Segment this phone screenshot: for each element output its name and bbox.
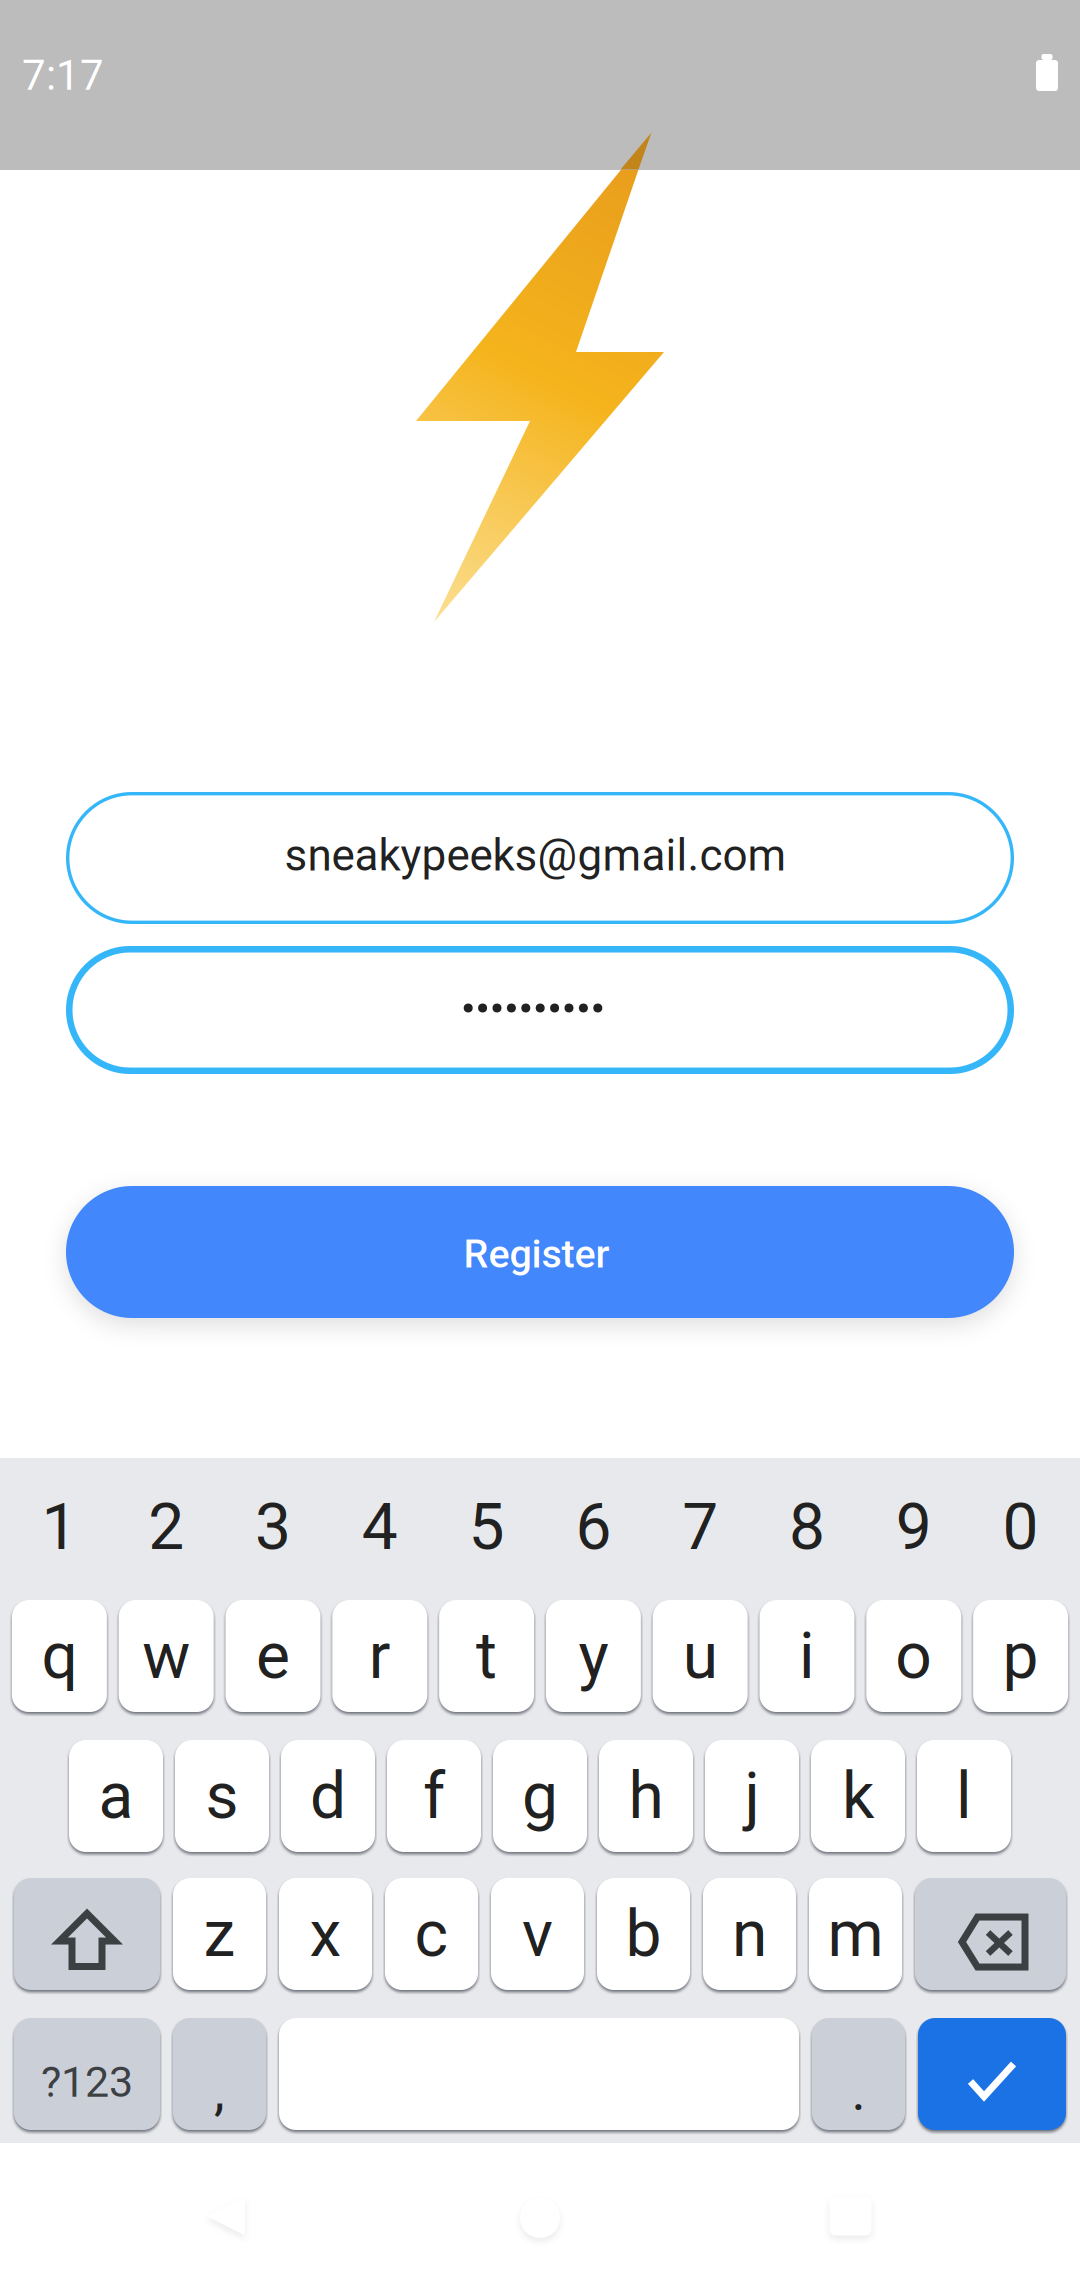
staticText: o <box>895 1618 932 1693</box>
staticText: 0 <box>1003 1489 1039 1564</box>
button[interactable]: d <box>281 1740 375 1852</box>
staticText: 8 <box>789 1489 825 1564</box>
staticText: y <box>578 1618 608 1693</box>
button[interactable]: Shift <box>14 1878 160 1990</box>
button[interactable]: l <box>917 1740 1011 1852</box>
staticText: sneakypeeks@gmail.com <box>284 830 786 881</box>
staticText: s <box>205 1758 238 1833</box>
staticText: 3 <box>255 1489 291 1564</box>
button[interactable]: a <box>69 1740 163 1852</box>
button[interactable]: s <box>175 1740 269 1852</box>
button[interactable]: 0 <box>967 1479 1074 1575</box>
button[interactable]: y <box>546 1600 641 1712</box>
staticText: j <box>744 1758 759 1833</box>
button[interactable]: 6 <box>540 1479 647 1575</box>
staticText: 5 <box>469 1489 505 1564</box>
staticText: ?123 <box>41 2057 133 2107</box>
button[interactable]: 2 <box>113 1479 220 1575</box>
staticText: 7:17 <box>22 51 104 100</box>
button[interactable]: w <box>119 1600 214 1712</box>
staticText: , <box>214 2059 225 2123</box>
button[interactable]: n <box>703 1878 796 1990</box>
staticText: h <box>628 1758 663 1833</box>
staticText: z <box>203 1896 235 1971</box>
staticText: x <box>309 1896 341 1971</box>
staticText: n <box>732 1896 767 1971</box>
staticText: r <box>369 1618 391 1693</box>
button[interactable] <box>279 2018 799 2130</box>
staticText: 7 <box>682 1489 718 1564</box>
staticText: m <box>827 1896 883 1971</box>
button[interactable]: x <box>279 1878 372 1990</box>
staticText: 4 <box>362 1489 398 1564</box>
button[interactable]: t <box>439 1600 534 1712</box>
staticText: . <box>851 2059 865 2123</box>
staticText: b <box>625 1896 661 1971</box>
button[interactable]: u <box>653 1600 748 1712</box>
staticText: 6 <box>575 1489 611 1564</box>
button[interactable]: Enter <box>918 2018 1066 2130</box>
button[interactable]: r <box>332 1600 427 1712</box>
button[interactable]: f <box>387 1740 481 1852</box>
staticText: e <box>256 1618 290 1693</box>
button[interactable]: Backspace <box>915 1878 1066 1990</box>
staticText: d <box>310 1758 346 1833</box>
button[interactable]: k <box>811 1740 905 1852</box>
button[interactable]: , <box>173 2018 266 2130</box>
button[interactable]: 9 <box>860 1479 967 1575</box>
staticText: q <box>41 1618 77 1693</box>
staticText: c <box>414 1896 448 1971</box>
button[interactable]: q <box>12 1600 107 1712</box>
button[interactable]: 1 <box>6 1479 113 1575</box>
staticText: g <box>522 1758 558 1833</box>
staticText: w <box>142 1618 190 1693</box>
button[interactable]: Register <box>66 1186 1014 1318</box>
button[interactable]: o <box>866 1600 961 1712</box>
button[interactable]: j <box>705 1740 799 1852</box>
staticText: p <box>1003 1618 1039 1693</box>
button[interactable]: 8 <box>754 1479 860 1575</box>
staticText: v <box>522 1896 553 1971</box>
button[interactable]: 4 <box>326 1479 433 1575</box>
button[interactable]: 3 <box>220 1479 326 1575</box>
staticText: i <box>799 1618 815 1693</box>
staticText: u <box>683 1618 718 1693</box>
button[interactable]: 7 <box>647 1479 754 1575</box>
staticText: k <box>842 1758 874 1833</box>
staticText: a <box>98 1758 133 1833</box>
button[interactable]: . <box>812 2018 905 2130</box>
staticText: 2 <box>148 1489 184 1564</box>
button[interactable]: e <box>225 1600 320 1712</box>
button[interactable]: p <box>973 1600 1068 1712</box>
staticText: 9 <box>896 1489 932 1564</box>
staticText: 1 <box>41 1489 77 1564</box>
button[interactable]: 5 <box>433 1479 540 1575</box>
staticText: l <box>956 1758 972 1833</box>
button[interactable]: h <box>599 1740 693 1852</box>
button[interactable]: g <box>493 1740 587 1852</box>
staticText: t <box>476 1618 497 1693</box>
button[interactable]: z <box>173 1878 266 1990</box>
staticText: f <box>423 1758 445 1833</box>
button[interactable]: ?123 <box>14 2018 160 2130</box>
button[interactable]: i <box>759 1600 854 1712</box>
button[interactable]: b <box>597 1878 690 1990</box>
staticText: Register <box>463 1231 609 1277</box>
button[interactable]: m <box>809 1878 902 1990</box>
button[interactable]: c <box>385 1878 478 1990</box>
button[interactable]: v <box>491 1878 584 1990</box>
